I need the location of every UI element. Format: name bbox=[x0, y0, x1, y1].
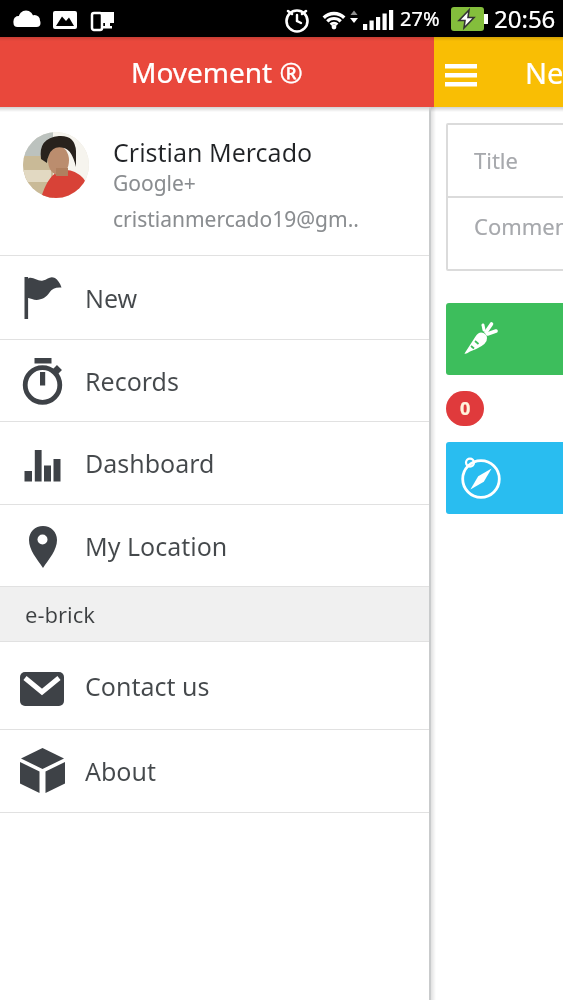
button[interactable]: Cristian Mercado bbox=[0, 107, 430, 255]
button[interactable]: Title bbox=[446, 123, 563, 196]
button[interactable]: About bbox=[0, 730, 430, 812]
staticText: New bbox=[525, 53, 563, 92]
staticText: About bbox=[85, 754, 156, 788]
staticText: My Location bbox=[85, 529, 228, 563]
staticText: cristianmercado19@gm.. bbox=[113, 205, 359, 234]
staticText: Movement ® bbox=[131, 53, 303, 91]
button[interactable]: e-brick bbox=[0, 587, 430, 641]
staticText: Comment bbox=[474, 211, 563, 241]
button[interactable] bbox=[446, 442, 563, 514]
button[interactable]: Contact us bbox=[0, 642, 430, 729]
staticText: New bbox=[85, 281, 138, 315]
button[interactable] bbox=[437, 55, 485, 95]
staticText: 20:56 bbox=[494, 2, 556, 35]
button[interactable]: Records bbox=[0, 340, 430, 421]
button[interactable]: New bbox=[0, 256, 430, 339]
staticText: Contact us bbox=[85, 669, 210, 703]
button[interactable]: Comment bbox=[446, 197, 563, 271]
button[interactable]: 0 bbox=[446, 391, 484, 426]
button[interactable]: Dashboard bbox=[0, 422, 430, 504]
staticText: Cristian Mercado bbox=[113, 135, 313, 169]
staticText: Dashboard bbox=[85, 446, 215, 480]
button[interactable]: My Location bbox=[0, 505, 430, 586]
staticText: Records bbox=[85, 364, 179, 398]
button[interactable] bbox=[446, 303, 563, 375]
staticText: Google+ bbox=[113, 169, 196, 198]
staticText: 27% bbox=[400, 5, 440, 32]
staticText: 0 bbox=[460, 396, 471, 421]
staticText: Title bbox=[474, 145, 518, 175]
staticText: e-brick bbox=[25, 599, 96, 629]
